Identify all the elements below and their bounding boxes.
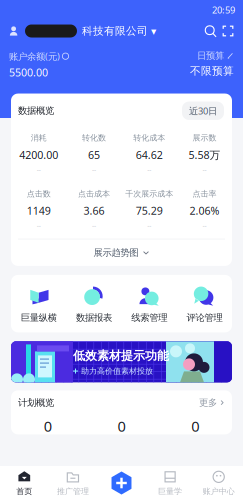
staticText: -- xyxy=(202,165,206,174)
staticText: 消耗 xyxy=(31,133,47,143)
button[interactable]: 新建 xyxy=(97,471,146,495)
staticText: 75.29 xyxy=(136,204,163,218)
staticText: 5500.00 xyxy=(9,65,48,80)
staticText: 65 xyxy=(88,148,100,162)
button[interactable]: 数据报表 xyxy=(66,284,121,323)
staticText: 计划概览 xyxy=(18,397,54,408)
staticText: 转化数 xyxy=(82,133,106,143)
staticText: 4200.00 xyxy=(19,148,58,162)
staticText: 日预算 xyxy=(197,50,224,61)
staticText: 首页 xyxy=(16,486,32,496)
staticText: 64.62 xyxy=(136,148,163,162)
staticText: 账户余额(元) xyxy=(9,50,60,62)
staticText: -- xyxy=(37,221,41,230)
button[interactable]: 展示趋势图 xyxy=(11,239,232,266)
button[interactable]: 近30日 xyxy=(182,102,224,120)
staticText: 数据概览 xyxy=(18,105,54,116)
button[interactable]: 评论管理 xyxy=(177,284,232,323)
staticText: 近30日 xyxy=(189,105,217,117)
staticText: 评论管理 xyxy=(186,312,222,323)
staticText: -- xyxy=(37,165,41,174)
staticText: 转化成本 xyxy=(133,133,165,143)
staticText: 1149 xyxy=(27,204,51,218)
button[interactable]: 首页 xyxy=(0,470,49,496)
button[interactable]: 巨量学 xyxy=(146,470,194,496)
staticText: 账户中心 xyxy=(203,486,235,496)
button[interactable]: 巨量纵横 xyxy=(11,284,66,323)
staticText: 推广管理 xyxy=(57,486,89,496)
staticText: 巨量纵横 xyxy=(21,312,57,323)
button[interactable]: 线索管理 xyxy=(121,284,177,323)
staticText: -- xyxy=(147,221,151,230)
staticText: 2.06% xyxy=(189,204,219,218)
staticText: 0 xyxy=(44,416,52,436)
button[interactable]: 搜索 xyxy=(204,24,217,37)
staticText: 5.58万 xyxy=(188,148,220,162)
staticText: 20:59 xyxy=(212,4,235,16)
button[interactable]: 账户中心 xyxy=(194,470,243,496)
staticText: 不限预算 xyxy=(190,64,234,78)
staticText: 助力高价值素材投放 xyxy=(81,366,153,376)
staticText: 3.66 xyxy=(83,204,104,218)
staticText: -- xyxy=(202,221,206,230)
staticText: 数据报表 xyxy=(76,312,112,323)
staticText: 巨量学 xyxy=(158,486,182,496)
staticText: 线索管理 xyxy=(131,312,167,323)
staticText: 展示趋势图 xyxy=(93,247,138,258)
staticText: 低效素材提示功能 xyxy=(73,348,169,363)
staticText: -- xyxy=(147,165,151,174)
staticText: 展示数 xyxy=(192,133,216,143)
staticText: 点击率 xyxy=(192,189,216,199)
button[interactable]: 推广管理 xyxy=(49,470,97,496)
staticText: 科技有限公司 ▾ xyxy=(82,24,156,37)
button[interactable]: 更多 xyxy=(199,397,225,408)
staticText: 0 xyxy=(191,416,199,436)
button[interactable]: 低效素材提示功能 xyxy=(11,341,232,382)
staticText: 更多 xyxy=(199,397,217,408)
staticText: 点击成本 xyxy=(78,189,110,199)
staticText: 千次展示成本 xyxy=(125,189,173,199)
button[interactable]: 扫一扫 xyxy=(222,25,234,37)
staticText: 点击数 xyxy=(27,189,51,199)
staticText: 0 xyxy=(117,416,125,436)
staticText: -- xyxy=(92,165,96,174)
staticText: -- xyxy=(92,221,96,230)
